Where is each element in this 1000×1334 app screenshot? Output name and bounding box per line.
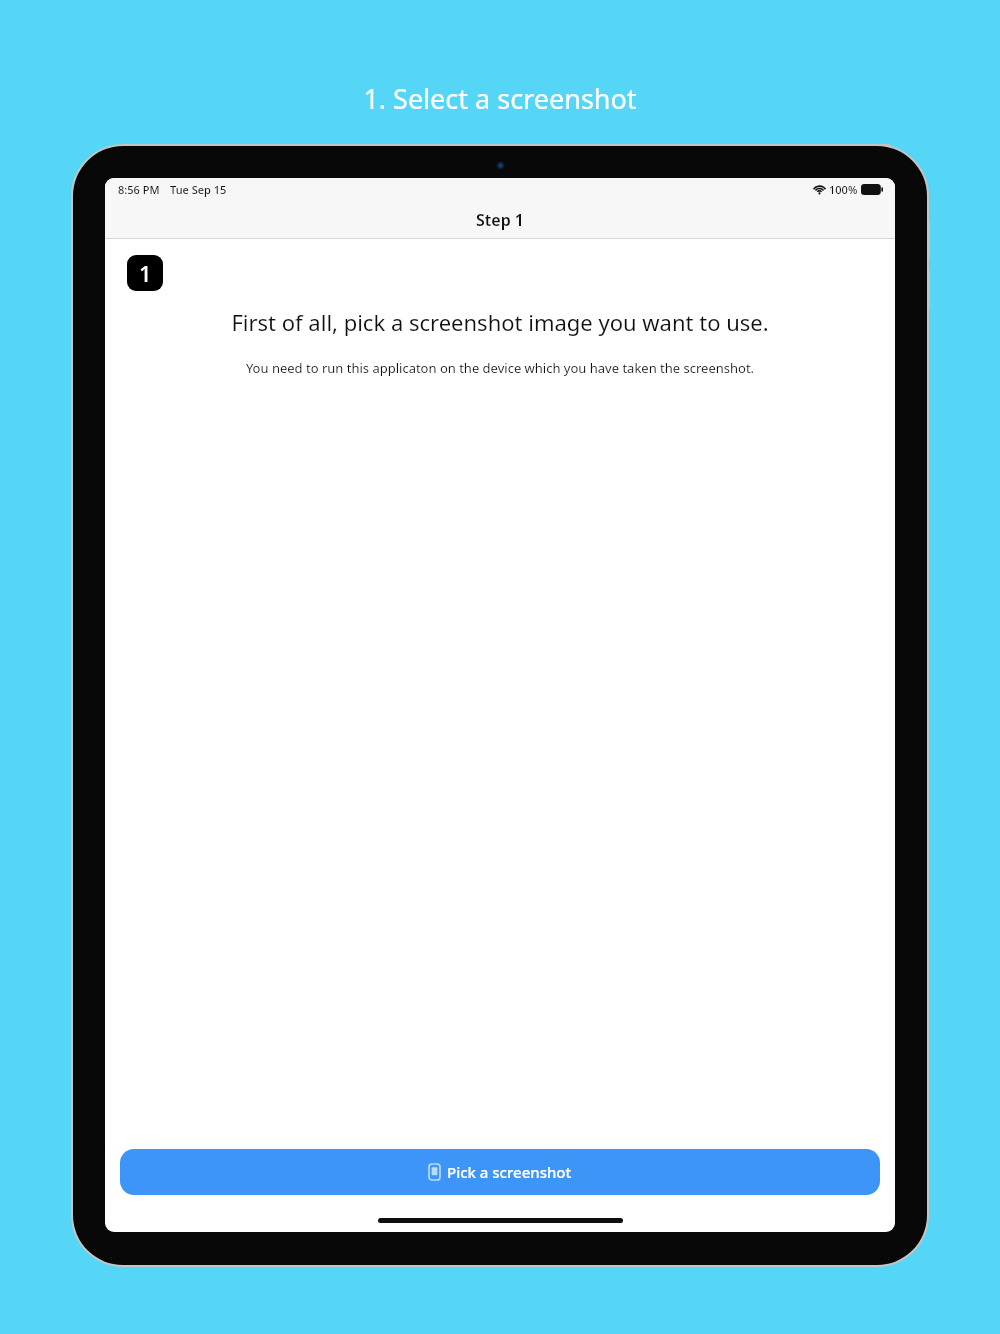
staticText: Step 1 [476,209,524,231]
button[interactable]: Pick a screenshot [120,1149,880,1195]
staticText: 8:56 PM [118,182,160,197]
staticText: Tue Sep 15 [170,182,227,197]
staticText: First of all, pick a screenshot image yo… [121,307,879,337]
staticText: You need to run this applicaton on the d… [121,359,879,377]
staticText: 100% [829,182,858,197]
staticText: 1 [139,258,152,288]
staticText: 1. Select a screenshot [0,80,1000,117]
button[interactable]: Step number 1 [127,255,163,291]
staticText: Pick a screenshot [447,1162,572,1182]
